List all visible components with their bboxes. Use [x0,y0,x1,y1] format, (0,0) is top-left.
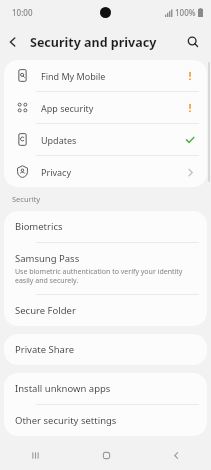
button[interactable]: App security [4,92,207,123]
staticText: Find My Mobile [41,70,184,82]
button[interactable]: Samsung Pass [4,243,207,294]
staticText: Secure Folder [15,304,76,317]
staticText: Use biometric authentication to verify y… [15,267,196,285]
button[interactable]: Biometrics [4,211,207,242]
staticText: 10:00 [12,7,33,18]
button[interactable]: Home [71,440,141,470]
button[interactable]: Secure Folder [4,295,207,326]
button[interactable]: Back [0,29,26,55]
staticText: App security [41,102,184,114]
staticText: Biometrics [15,220,63,233]
button[interactable]: Recents [0,440,71,470]
staticText: Samsung Pass [15,252,80,265]
staticText: Security and privacy [30,34,157,51]
button[interactable]: Privacy [4,156,207,187]
button[interactable]: Updates [4,124,207,155]
button[interactable]: Private Share [4,334,207,365]
staticText: Privacy [41,166,184,178]
staticText: Updates [41,134,184,146]
button[interactable]: Other security settings [4,405,207,436]
button[interactable]: Back [141,440,211,470]
staticText: Install unknown apps [15,382,111,395]
staticText: Other security settings [15,414,117,427]
staticText: Private Share [15,343,75,356]
button[interactable]: Search [181,30,205,54]
button[interactable]: Find My Mobile [4,60,207,91]
staticText: 100% [175,7,196,18]
button[interactable]: Install unknown apps [4,373,207,404]
staticText: Security [12,194,41,204]
